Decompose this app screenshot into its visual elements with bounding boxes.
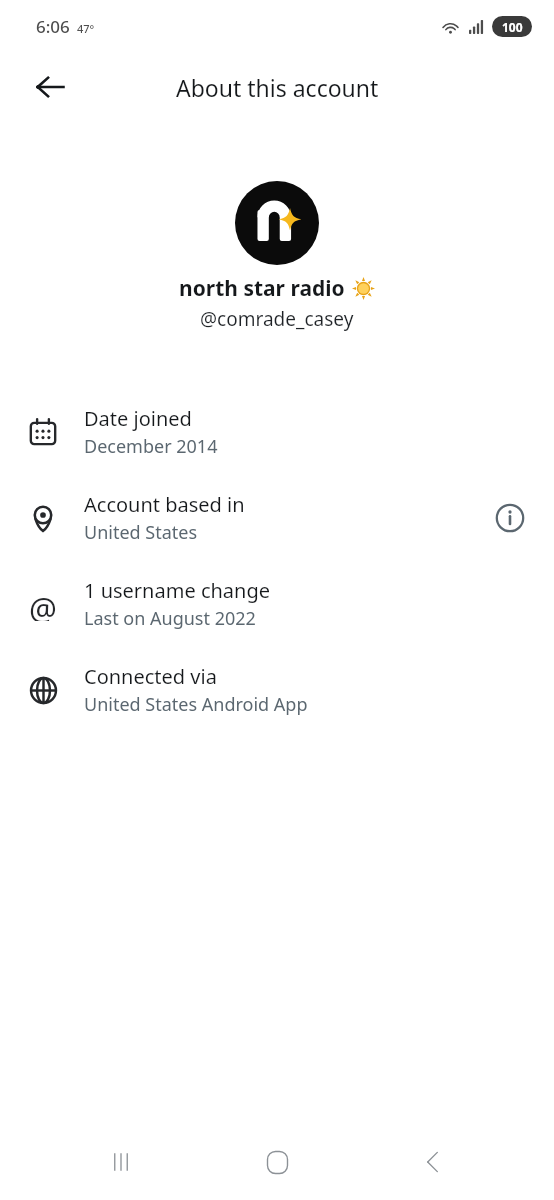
staticText: United States: [84, 520, 198, 545]
button[interactable]: Connected via: [0, 647, 554, 733]
staticText: United States Android App: [84, 692, 308, 717]
staticText: @comrade_casey: [200, 306, 354, 332]
staticText: Date joined: [84, 405, 192, 432]
staticText: About this account: [176, 72, 379, 103]
button[interactable]: Recents: [86, 1127, 156, 1197]
button[interactable]: Account based in: [0, 475, 554, 561]
staticText: 1 username change: [84, 577, 270, 604]
staticText: north star radio: [179, 274, 345, 303]
staticText: @: [29, 587, 57, 621]
staticText: 47°: [77, 21, 95, 36]
staticText: Connected via: [84, 663, 217, 690]
button[interactable]: Profile photo: [235, 181, 319, 265]
staticText: 100: [502, 19, 523, 35]
button[interactable]: @: [0, 561, 554, 647]
button[interactable]: Home: [242, 1127, 312, 1197]
button[interactable]: Back: [22, 59, 78, 115]
staticText: Last on August 2022: [84, 606, 256, 631]
button[interactable]: Back: [398, 1127, 468, 1197]
staticText: December 2014: [84, 434, 218, 459]
staticText: Account based in: [84, 491, 245, 518]
staticText: 6:06: [36, 15, 70, 38]
button[interactable]: More information: [488, 496, 532, 540]
button[interactable]: Date joined: [0, 389, 554, 475]
